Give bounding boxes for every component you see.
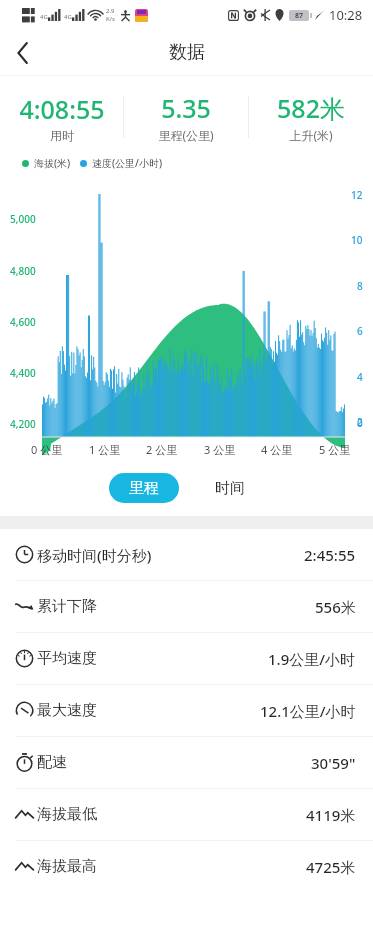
staticText: 平均速度 [37,649,97,668]
button[interactable]: 海拔最高 [0,841,373,892]
staticText: 5.35 [161,91,211,125]
button[interactable]: 平均速度 [0,633,373,684]
staticText: 87 [295,11,304,21]
staticText: 4,400 [10,366,36,380]
staticText: 4 [357,370,363,384]
staticText: 1 公里 [89,442,121,457]
staticText: 海拔(米) [34,156,71,170]
staticText: 5,000 [10,212,36,226]
staticText: 1.9公里/小时 [268,649,356,669]
staticText: 4725米 [306,857,356,877]
staticText: 2 [357,415,363,429]
staticText: 海拔最高 [37,857,97,876]
staticText: 10 [351,233,363,247]
staticText: 4G [40,13,48,21]
staticText: 配速 [37,753,67,772]
staticText: 2:45:55 [304,545,356,565]
staticText: 里程 [129,479,159,498]
staticText: 2.9 [106,7,115,15]
staticText: 30'59" [311,753,356,773]
staticText: 海拔最低 [37,805,97,824]
staticText: 8 [357,279,363,293]
button[interactable]: 里程 [109,473,179,503]
staticText: 12.1公里/小时 [260,701,356,721]
staticText: 速度(公里/小时) [92,156,163,170]
staticText: 10:28 [329,6,363,24]
staticText: 4,200 [10,417,36,431]
staticText: 3 公里 [204,442,236,457]
staticText: 4G [64,13,72,21]
staticText: 582米 [277,91,345,125]
staticText: 移动时间(时分秒) [37,545,152,565]
button[interactable]: 时间 [195,473,265,503]
staticText: 时间 [215,479,245,498]
button[interactable]: 累计下降 [0,581,373,632]
staticText: 上升(米) [289,127,333,143]
staticText: 累计下降 [37,597,97,616]
staticText: 0 [357,416,363,430]
staticText: 4 公里 [261,442,293,457]
staticText: 数据 [169,41,205,64]
staticText: 4119米 [306,805,356,825]
staticText: 最大速度 [37,701,97,720]
staticText: 2 公里 [146,442,178,457]
button[interactable]: 配速 [0,737,373,788]
staticText: 12 [351,188,363,202]
button[interactable]: 最大速度 [0,685,373,736]
staticText: 用时 [50,128,74,143]
button[interactable]: 返回 [0,30,46,75]
staticText: 4:08:55 [19,92,105,126]
staticText: 6 [357,324,363,338]
staticText: K/s [106,15,115,23]
staticText: 5 公里 [319,442,351,457]
staticText: 0 公里 [31,442,63,457]
staticText: 4,600 [10,315,36,329]
button[interactable]: 移动时间(时分秒) [0,529,373,580]
staticText: 4,800 [10,264,36,278]
button[interactable]: 海拔最低 [0,789,373,840]
staticText: 里程(公里) [158,127,214,143]
staticText: 556米 [315,597,356,617]
